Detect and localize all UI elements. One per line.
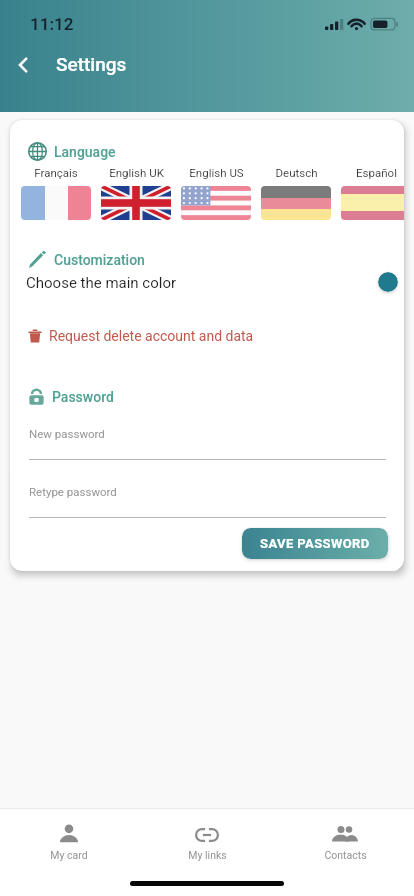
staticText: Settings [56, 53, 127, 75]
button[interactable]: English UK [101, 166, 171, 220]
button[interactable]: Français [21, 166, 91, 220]
staticText: My card [50, 849, 88, 861]
staticText: English US [189, 166, 244, 179]
button[interactable]: Deutsch [261, 166, 331, 220]
button[interactable]: Request delete account and data [28, 328, 254, 344]
button[interactable]: Contacts [276, 814, 414, 870]
staticText: Deutsch [275, 166, 318, 179]
staticText: English UK [109, 166, 164, 179]
button[interactable]: New password [29, 426, 386, 460]
button[interactable]: English US [181, 166, 251, 220]
button[interactable]: Customization [28, 250, 145, 269]
button[interactable]: SAVE PASSWORD [242, 528, 388, 559]
button[interactable]: Choose main color [378, 272, 398, 292]
staticText: Français [34, 166, 78, 179]
button[interactable]: Language [28, 142, 116, 161]
button[interactable]: Password [28, 388, 114, 405]
button[interactable]: Back [6, 48, 40, 82]
staticText: Contacts [324, 849, 367, 861]
button[interactable]: My links [138, 814, 276, 870]
staticText: Retype password [29, 485, 117, 498]
button[interactable]: Retype password [29, 484, 386, 518]
staticText: My links [188, 849, 227, 861]
staticText: 11:12 [30, 14, 74, 34]
staticText: Choose the main color [26, 274, 177, 292]
staticText: New password [29, 427, 105, 440]
button[interactable]: Español [341, 166, 404, 220]
staticText: SAVE PASSWORD [260, 536, 370, 551]
staticText: Password [52, 389, 114, 405]
staticText: Request delete account and data [49, 328, 254, 344]
staticText: Customization [54, 252, 145, 268]
button[interactable]: My card [0, 814, 138, 870]
staticText: Language [54, 144, 116, 160]
staticText: Español [356, 166, 397, 179]
